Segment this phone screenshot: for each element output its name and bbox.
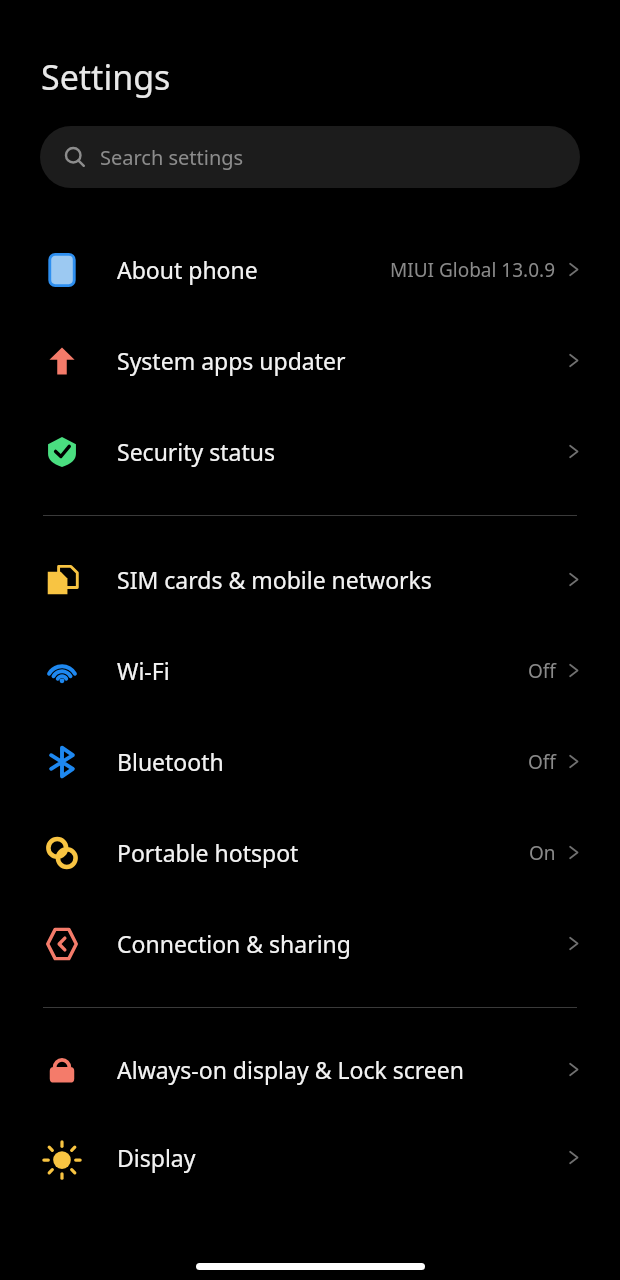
other: Display [45,1141,79,1175]
other: Connection and sharing [45,927,79,961]
button[interactable]: Bluetooth [0,716,620,807]
staticText: SIM cards & mobile networks [117,564,556,595]
button[interactable]: Portable hotspot [0,807,620,898]
staticText: Off [528,658,556,684]
staticText: Always-on display & Lock screen [117,1054,556,1085]
button[interactable]: Always-on display and Lock screen [0,1026,620,1112]
other: Bluetooth [45,745,79,779]
button[interactable]: Display [0,1112,620,1203]
staticText: MIUI Global 13.0.9 [390,257,556,283]
other: Always-on display and Lock screen [45,1052,79,1086]
staticText: Portable hotspot [117,837,519,868]
other: Portable hotspot [45,836,79,870]
staticText: System apps updater [117,345,556,376]
button[interactable]: Security status [0,406,620,497]
staticText: Off [528,749,556,775]
other: Wi-Fi [45,654,79,688]
staticText: Search settings [100,144,244,171]
button[interactable]: Wi-Fi [0,625,620,716]
other: System apps updater [45,344,79,378]
button[interactable]: Search settings [40,126,580,188]
staticText: Wi-Fi [117,655,518,686]
button[interactable]: Connection and sharing [0,898,620,989]
button[interactable]: About phone [0,224,620,315]
button[interactable]: SIM cards and mobile networks [0,534,620,625]
other: Security status [45,435,79,469]
other: About phone [45,253,79,287]
staticText: Display [117,1142,556,1173]
staticText: Settings [41,54,171,100]
staticText: Connection & sharing [117,928,556,959]
staticText: Security status [117,436,556,467]
staticText: On [529,840,556,866]
other: SIM cards and mobile networks [45,563,79,597]
button[interactable]: System apps updater [0,315,620,406]
staticText: Bluetooth [117,746,518,777]
staticText: About phone [117,254,380,285]
